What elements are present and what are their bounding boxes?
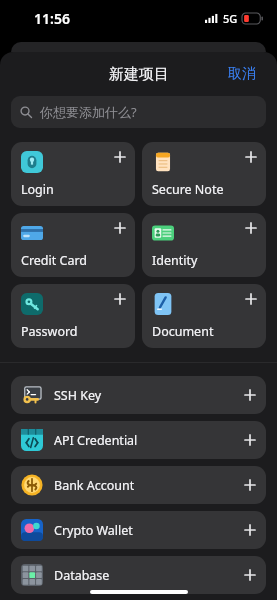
staticText: 你想要添加什么? — [40, 103, 137, 121]
button[interactable]: Identity — [142, 213, 266, 277]
staticText: Document — [152, 323, 214, 340]
staticText: API Credential — [54, 432, 138, 449]
staticText: 取消 — [228, 65, 256, 83]
button[interactable]: Crypto Wallet — [11, 511, 266, 549]
staticText: 11:56 — [34, 9, 70, 28]
staticText: Login — [21, 181, 54, 198]
button[interactable]: Secure Note — [142, 142, 266, 206]
staticText: 5G — [223, 11, 238, 26]
staticText: Credit Card — [21, 252, 88, 269]
button[interactable]: Login — [11, 142, 135, 206]
staticText: Bank Account — [54, 477, 135, 494]
button[interactable]: API Credential — [11, 421, 266, 459]
button[interactable]: Database — [11, 556, 266, 594]
staticText: Crypto Wallet — [54, 522, 133, 539]
button[interactable]: Bank Account — [11, 466, 266, 504]
staticText: 新建项目 — [109, 65, 169, 84]
staticText: Identity — [152, 252, 198, 269]
button[interactable]: 你想要添加什么? — [11, 96, 266, 128]
other: Home indicator — [90, 590, 188, 594]
button[interactable]: Document — [142, 284, 266, 348]
staticText: SSH Key — [54, 387, 102, 404]
button[interactable]: Password — [11, 284, 135, 348]
staticText: Secure Note — [152, 181, 224, 198]
button[interactable]: SSH Key — [11, 376, 266, 414]
button[interactable]: 取消 — [218, 61, 266, 87]
staticText: Password — [21, 323, 78, 340]
button[interactable]: Credit Card — [11, 213, 135, 277]
staticText: Database — [54, 567, 110, 584]
